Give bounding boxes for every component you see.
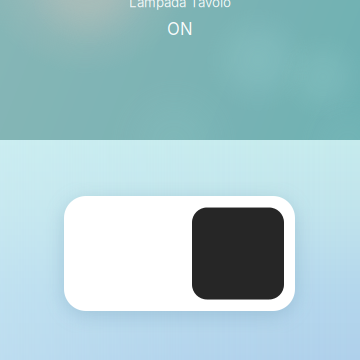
button[interactable]: Lampada Tavolo, on [64, 196, 295, 311]
staticText: ON [167, 19, 193, 39]
staticText: Lampada Tavolo [129, 0, 231, 11]
